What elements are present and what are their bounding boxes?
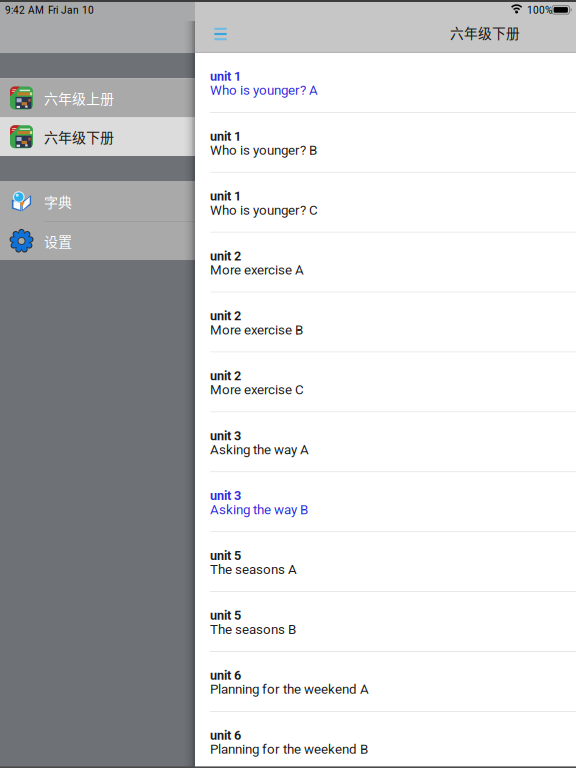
button[interactable]: unit 2 xyxy=(195,352,576,412)
button[interactable]: Show sidebar xyxy=(204,21,236,47)
button[interactable]: unit 6 xyxy=(195,712,576,768)
button[interactable]: unit 1 xyxy=(195,173,576,233)
staticText: More exercise B xyxy=(210,322,303,338)
staticText: Who is younger? B xyxy=(210,142,317,158)
staticText: The seasons A xyxy=(210,562,297,577)
staticText: 设置 xyxy=(44,231,72,251)
button[interactable]: 设置 xyxy=(0,222,195,260)
staticText: 六年级上册 xyxy=(44,88,114,108)
button[interactable]: unit 5 xyxy=(195,592,576,652)
button[interactable]: 六年级下册 xyxy=(0,117,195,156)
staticText: unit 2 xyxy=(210,249,241,263)
button[interactable]: unit 3 xyxy=(195,412,576,472)
staticText: 字典 xyxy=(44,191,72,212)
staticText: unit 5 xyxy=(210,608,241,623)
button[interactable]: unit 2 xyxy=(195,233,576,293)
button[interactable]: unit 6 xyxy=(195,652,576,712)
button[interactable]: 字典 xyxy=(0,181,195,222)
button[interactable]: unit 3 xyxy=(195,472,576,532)
staticText: More exercise C xyxy=(210,382,304,398)
staticText: unit 6 xyxy=(210,668,241,683)
staticText: 六年级下册 xyxy=(44,127,114,147)
staticText: Asking the way A xyxy=(210,442,309,457)
staticText: Fri Jan 10 xyxy=(48,4,94,16)
staticText: Planning for the weekend A xyxy=(210,681,369,697)
staticText: unit 3 xyxy=(210,428,241,443)
staticText: unit 1 xyxy=(210,69,241,84)
button[interactable]: unit 2 xyxy=(195,293,576,352)
button[interactable]: 六年级上册 xyxy=(0,78,195,117)
staticText: More exercise A xyxy=(210,262,304,278)
staticText: unit 1 xyxy=(210,129,241,144)
staticText: unit 3 xyxy=(210,488,241,503)
staticText: Who is younger? A xyxy=(210,82,318,98)
button[interactable]: unit 1 xyxy=(195,53,576,113)
staticText: unit 2 xyxy=(210,368,241,383)
staticText: 100% xyxy=(527,4,552,16)
button[interactable]: unit 5 xyxy=(195,532,576,592)
staticText: Planning for the weekend B xyxy=(210,741,368,757)
staticText: The seasons B xyxy=(210,622,296,637)
staticText: unit 5 xyxy=(210,548,241,563)
staticText: Who is younger? C xyxy=(210,202,318,218)
staticText: 9:42 AM xyxy=(5,4,44,16)
staticText: Asking the way B xyxy=(210,502,308,517)
staticText: unit 2 xyxy=(210,309,241,323)
staticText: 六年级下册 xyxy=(450,23,520,42)
staticText: unit 6 xyxy=(210,728,241,743)
button[interactable]: unit 1 xyxy=(195,113,576,173)
staticText: unit 1 xyxy=(210,189,241,204)
